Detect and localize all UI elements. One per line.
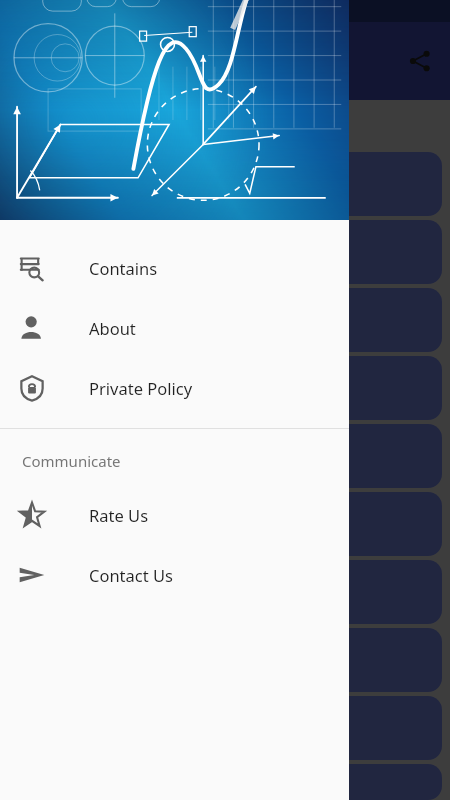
button[interactable]: Share <box>400 41 440 81</box>
staticText: Rate Us <box>89 504 149 526</box>
button[interactable]: Contact Us <box>0 545 349 605</box>
button[interactable]: Private Policy <box>0 358 349 418</box>
button[interactable] <box>8 220 442 284</box>
button[interactable] <box>8 696 442 760</box>
button[interactable]: Rate Us <box>0 485 349 545</box>
button[interactable] <box>8 492 442 556</box>
staticText: Contains <box>89 257 158 279</box>
button[interactable] <box>8 628 442 692</box>
staticText: Communicate <box>22 451 121 471</box>
button[interactable] <box>8 356 442 420</box>
button[interactable]: About <box>0 298 349 358</box>
staticText: About <box>89 317 136 339</box>
button[interactable] <box>8 152 442 216</box>
staticText: Contact Us <box>89 564 173 586</box>
button[interactable]: Contains <box>0 238 349 298</box>
button[interactable] <box>8 424 442 488</box>
button[interactable] <box>8 560 442 624</box>
button[interactable] <box>8 764 442 800</box>
staticText: Physics <box>250 47 324 76</box>
staticText: Private Policy <box>89 377 193 399</box>
button[interactable] <box>8 288 442 352</box>
